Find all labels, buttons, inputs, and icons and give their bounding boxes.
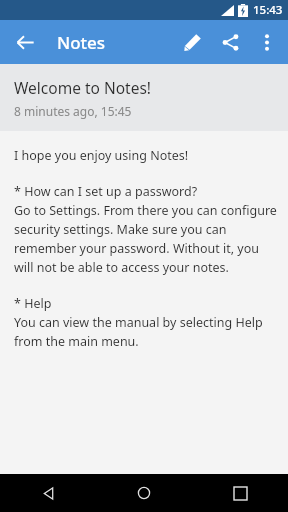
staticText: * Help You can view the manual by select…: [14, 295, 278, 350]
button[interactable]: Share: [211, 23, 249, 61]
button[interactable]: Recent apps: [192, 474, 288, 512]
staticText: 8 minutes ago, 15:45: [14, 103, 132, 119]
button[interactable]: Back: [0, 474, 96, 512]
button[interactable]: Home: [96, 474, 192, 512]
staticText: Notes: [57, 31, 106, 54]
button[interactable]: Edit: [173, 23, 211, 61]
staticText: * How can I set up a password? Go to Set…: [14, 183, 278, 276]
staticText: I hope you enjoy using Notes!: [14, 147, 189, 164]
staticText: 15:43: [253, 2, 283, 18]
button[interactable]: Back: [8, 25, 42, 59]
staticText: Welcome to Notes!: [14, 77, 152, 98]
button[interactable]: More options: [249, 24, 285, 60]
